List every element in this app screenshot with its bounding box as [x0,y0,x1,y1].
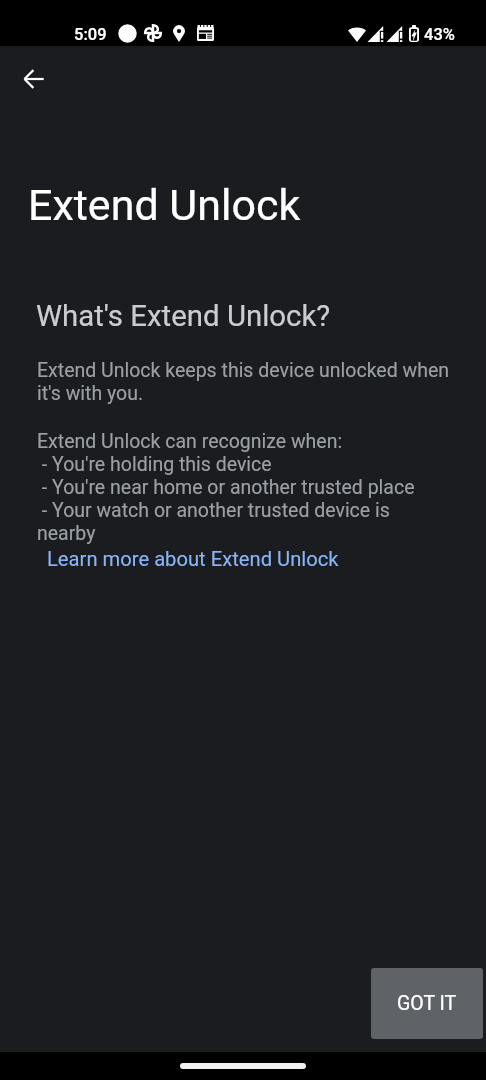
staticText: Extend Unlock can recognize when: - You'… [37,430,451,545]
button[interactable]: Navigate up [9,55,57,103]
staticText: Extend Unlock keeps this device unlocked… [37,359,451,405]
staticText: 5:09 [74,25,107,44]
staticText: 43% [424,25,455,44]
button[interactable]: GOT IT [371,968,483,1039]
staticText: GOT IT [397,992,457,1015]
staticText: What's Extend Unlock? [36,299,331,333]
button[interactable]: Learn more about Extend Unlock [47,547,339,571]
staticText: Extend Unlock [28,180,301,230]
